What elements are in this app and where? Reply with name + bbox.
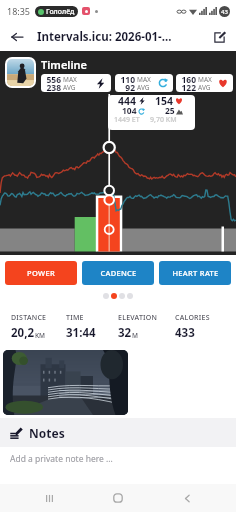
button[interactable]: Back (6, 26, 28, 48)
button[interactable]: Route photo (3, 350, 128, 415)
staticText: MAX AVG (63, 75, 77, 92)
staticText: 1449 ET (114, 115, 140, 125)
staticText: 9,70 KM (150, 115, 177, 125)
button[interactable]: POWER (5, 261, 77, 285)
staticText: POWER (27, 268, 55, 278)
button[interactable]: HEART RATE (159, 261, 231, 285)
staticText: 433 (175, 325, 195, 341)
staticText: TIME (66, 313, 84, 323)
staticText: 104 (122, 105, 137, 117)
staticText: M (132, 331, 138, 340)
staticText: MAX AVG (137, 75, 151, 92)
button[interactable]: Home (98, 484, 138, 512)
staticText: 444 (118, 95, 137, 108)
staticText: 556 238 (46, 74, 61, 92)
staticText: DISTANCE (11, 313, 47, 323)
button[interactable]: Back (167, 484, 207, 512)
button[interactable]: Recents (29, 484, 69, 512)
button[interactable]: Activity photo (7, 59, 34, 86)
staticText: HEART RATE (172, 268, 219, 278)
staticText: KM (35, 331, 46, 340)
staticText: 154 (155, 95, 174, 108)
staticText: MAX AVG (198, 75, 212, 92)
staticText: 110 92 (120, 74, 135, 92)
staticText: Intervals.icu: 2026-01-... (37, 29, 172, 45)
staticText: 18:35 (7, 5, 31, 17)
staticText: Notes (29, 425, 65, 441)
staticText: 31:44 (66, 325, 96, 341)
staticText: Add a private note here ... (10, 453, 113, 465)
staticText: 20,2 (11, 325, 35, 341)
staticText: 43 (221, 8, 228, 16)
staticText: 160 122 (181, 74, 196, 92)
staticText: 32 (118, 325, 132, 341)
staticText: CADENCE (100, 268, 137, 278)
staticText: Гололёд (46, 7, 75, 17)
staticText: CALORIES (175, 313, 210, 323)
button[interactable]: Add a private note here ... (0, 447, 236, 471)
staticText: 25 (165, 105, 175, 117)
staticText: Timeline (41, 57, 88, 72)
button[interactable]: CADENCE (82, 261, 154, 285)
button[interactable]: Open in browser (209, 27, 229, 47)
staticText: ELEVATION (118, 313, 158, 323)
